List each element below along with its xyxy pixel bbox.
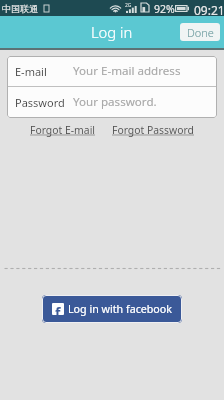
staticText: 92%	[154, 2, 175, 16]
staticText: Log in with facebook	[68, 302, 173, 317]
staticText: Forgot E-mail	[30, 123, 96, 137]
button[interactable]: f	[42, 295, 182, 323]
button[interactable]: Forgot Password	[112, 123, 194, 137]
staticText: E-mail	[15, 64, 47, 79]
button[interactable]: Password	[7, 87, 217, 117]
button[interactable]: Forgot E-mail	[30, 123, 96, 137]
button[interactable]: Done	[180, 23, 220, 41]
staticText: 中国联通	[2, 3, 38, 14]
staticText: Done	[187, 25, 214, 40]
staticText: Your password.	[73, 94, 157, 110]
staticText: Password	[15, 95, 65, 110]
button[interactable]: E-mail	[7, 56, 217, 86]
staticText: 09:21	[194, 2, 224, 18]
staticText: Your E-mail address	[73, 63, 181, 79]
staticText: f	[55, 303, 61, 315]
staticText: Forgot Password	[112, 123, 194, 137]
staticText: 2G	[125, 2, 132, 9]
staticText: Log in	[91, 22, 133, 42]
